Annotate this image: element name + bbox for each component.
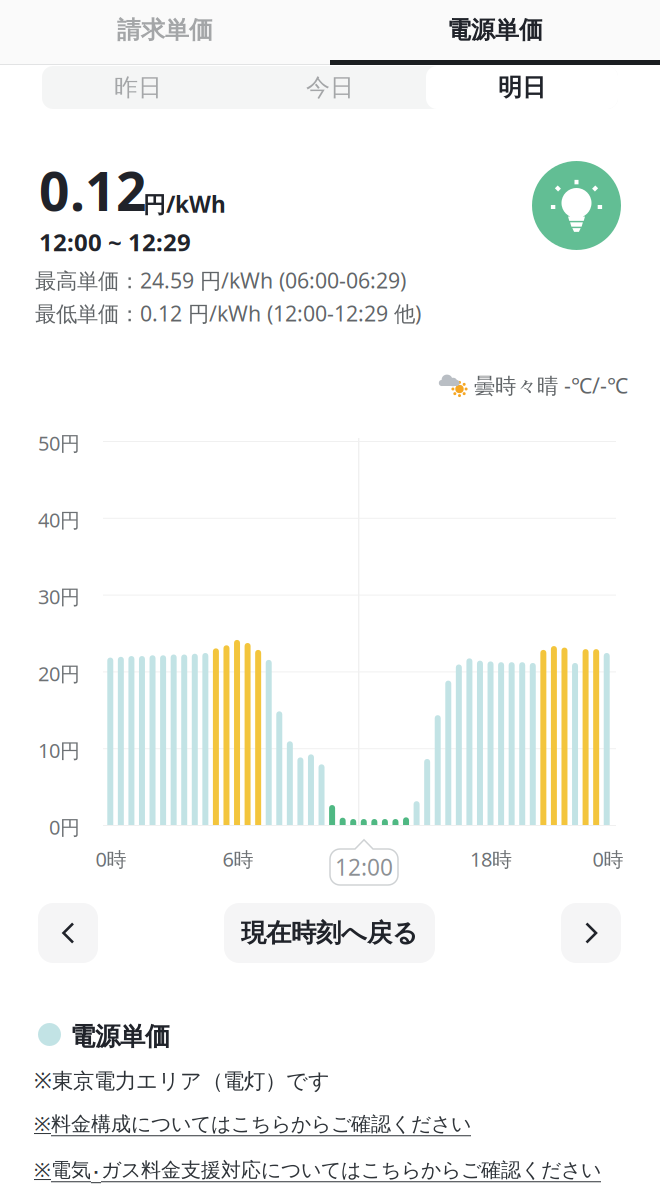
- staticText: 現在時刻へ戻る: [241, 917, 418, 948]
- button[interactable]: 今日: [234, 66, 426, 109]
- staticText: 今日: [306, 73, 354, 102]
- staticText: 10円: [38, 737, 80, 763]
- staticText: 円/kWh: [143, 189, 226, 219]
- staticText: 曇時々晴 -℃/-℃: [474, 371, 628, 399]
- staticText: 0時: [592, 846, 623, 872]
- staticText: 昨日: [114, 73, 162, 102]
- button[interactable]: 前の時間: [38, 903, 98, 963]
- button[interactable]: 現在時刻へ戻る: [224, 903, 435, 963]
- button[interactable]: 昨日: [42, 66, 234, 109]
- staticText: 6時: [222, 846, 253, 872]
- staticText: 12:00: [335, 852, 393, 882]
- staticText: 明日: [498, 73, 546, 102]
- button[interactable]: ※電気･ガス料金支援対応についてはこちらからご確認ください: [34, 1156, 601, 1183]
- staticText: 30円: [38, 583, 80, 610]
- button[interactable]: 請求単価: [0, 0, 330, 60]
- staticText: 電源単価: [70, 1021, 170, 1052]
- staticText: 最高単価：24.59 円/kWh (06:00-06:29): [35, 266, 406, 294]
- staticText: 0.12: [39, 155, 147, 226]
- staticText: 40円: [38, 506, 80, 533]
- staticText: 50円: [38, 430, 80, 456]
- staticText: 0時: [95, 846, 126, 872]
- staticText: ※電気･ガス料金支援対応についてはこちらからご確認ください: [34, 1156, 601, 1183]
- staticText: 0円: [49, 814, 80, 840]
- staticText: ※東京電力エリア（電灯）です: [34, 1066, 330, 1094]
- button[interactable]: 明日: [426, 66, 618, 109]
- staticText: 20円: [38, 660, 80, 687]
- staticText: ※料金構成についてはこちらからご確認ください: [34, 1110, 471, 1137]
- staticText: 18時: [470, 846, 512, 872]
- staticText: 電源単価: [447, 15, 543, 45]
- button[interactable]: ※料金構成についてはこちらからご確認ください: [34, 1110, 471, 1137]
- button[interactable]: 次の時間: [561, 903, 621, 963]
- staticText: 請求単価: [117, 15, 213, 45]
- staticText: 最低単価：0.12 円/kWh (12:00-12:29 他): [35, 299, 421, 327]
- button[interactable]: 電源単価: [330, 0, 660, 60]
- staticText: 12:00 ~ 12:29: [39, 226, 191, 258]
